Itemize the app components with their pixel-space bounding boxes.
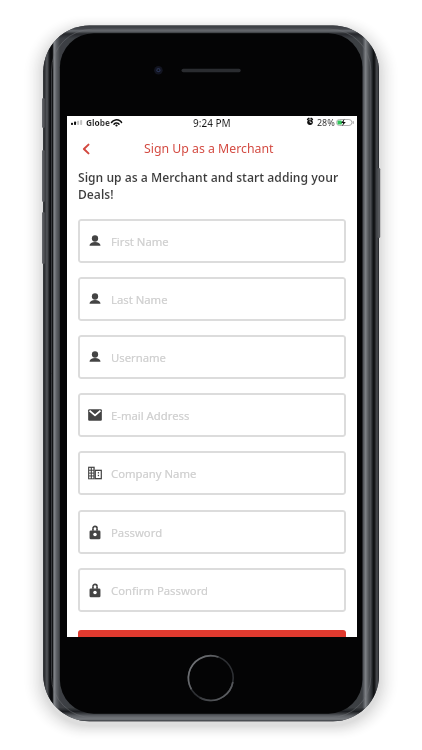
button[interactable]: First Name (78, 219, 346, 263)
button[interactable]: Back (78, 141, 94, 157)
button[interactable]: Company Name (78, 451, 346, 495)
button[interactable]: Last Name (78, 277, 346, 321)
staticText: E-mail Address (111, 408, 190, 423)
staticText: Globe (86, 117, 111, 128)
staticText: Last Name (111, 292, 168, 307)
staticText: Sign up as a Merchant and start adding y… (78, 169, 339, 203)
staticText: 9:24 PM (193, 116, 231, 130)
staticText: Username (111, 350, 166, 365)
staticText: First Name (111, 234, 169, 249)
staticText: Sign Up as a Merchant (144, 140, 274, 157)
staticText: Company Name (111, 466, 197, 481)
button[interactable]: SIGN UP (78, 630, 346, 637)
button[interactable]: Username (78, 335, 346, 379)
staticText: Confirm Password (111, 583, 209, 598)
button[interactable]: E-mail Address (78, 393, 346, 437)
staticText: 28% (317, 116, 335, 128)
staticText: Password (111, 525, 163, 540)
button[interactable]: Confirm Password (78, 568, 346, 612)
button[interactable]: Password (78, 510, 346, 554)
